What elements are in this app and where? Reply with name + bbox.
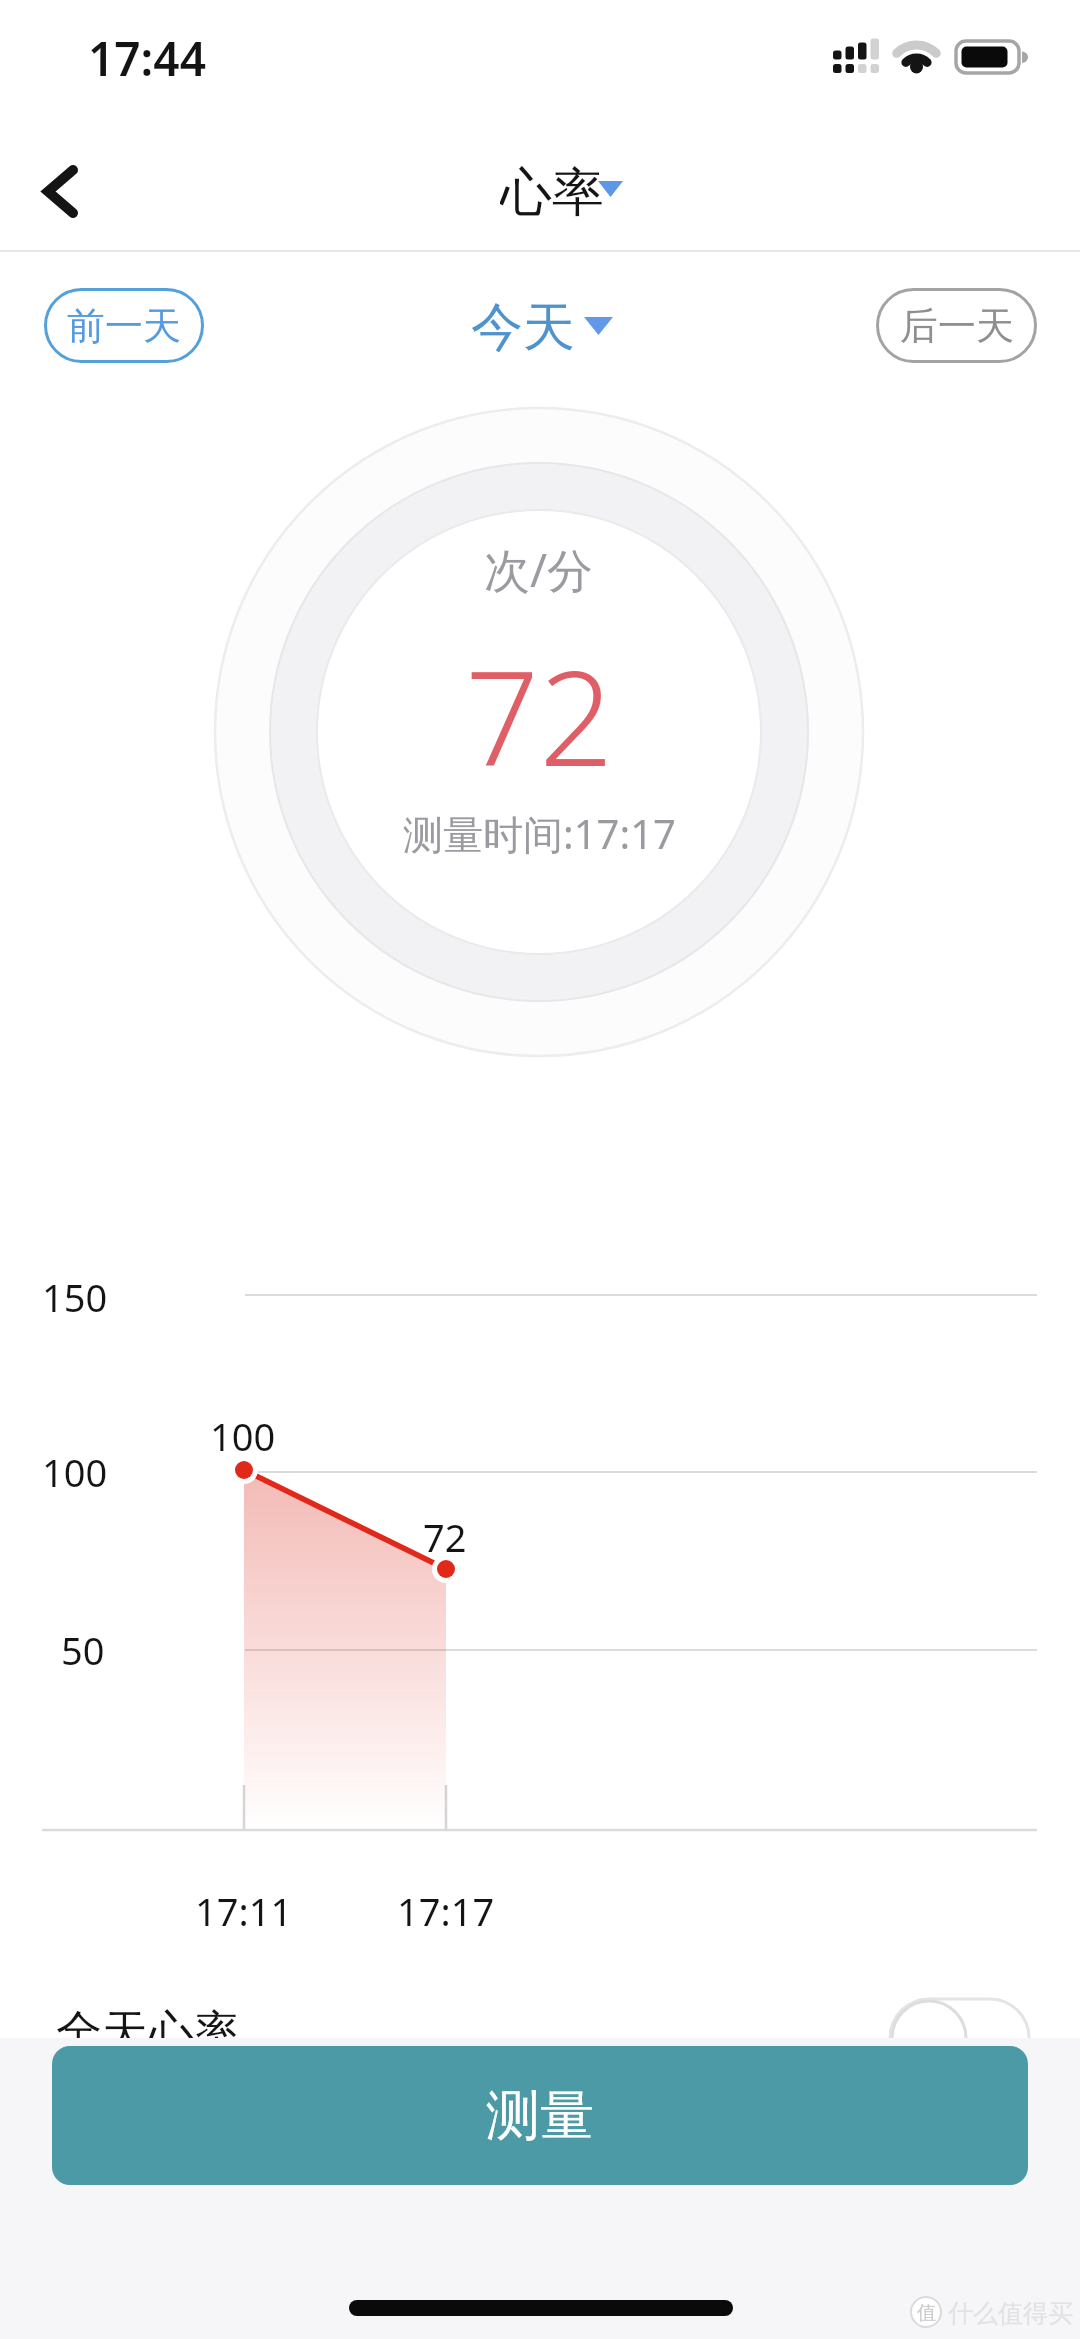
staticText: 前一天 — [67, 302, 181, 350]
staticText: 后一天 — [900, 302, 1014, 350]
staticText: 100 — [210, 1410, 276, 1462]
staticText: 测量 — [486, 2082, 594, 2150]
staticText: 17:44 — [88, 27, 206, 87]
button[interactable]: 心率 — [432, 160, 672, 220]
button[interactable]: 测量 — [52, 2046, 1028, 2185]
button[interactable]: 后一天 — [876, 288, 1037, 363]
staticText: 测量时间:17:17 — [403, 806, 676, 861]
staticText: 72 — [423, 1511, 467, 1563]
staticText: 全天心率 — [56, 2004, 240, 2060]
staticText: 次/分 — [484, 538, 594, 598]
staticText: 今天 — [471, 295, 575, 357]
button[interactable]: 前一天 — [44, 288, 204, 363]
staticText: 150 — [42, 1271, 108, 1323]
staticText: 100 — [42, 1446, 108, 1498]
staticText: 72 — [465, 627, 614, 767]
staticText: 值 — [917, 2301, 936, 2323]
staticText: 什么值得买 — [948, 2298, 1073, 2329]
staticText: 心率 — [500, 160, 604, 220]
staticText: 17:17 — [397, 1885, 495, 1937]
button[interactable]: 今天 — [423, 295, 623, 357]
staticText: 17:11 — [195, 1885, 293, 1937]
staticText: 50 — [61, 1624, 105, 1676]
